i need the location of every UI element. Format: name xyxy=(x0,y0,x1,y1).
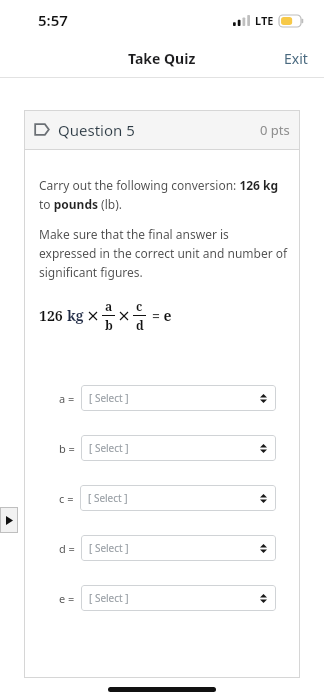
staticText: a = xyxy=(59,391,75,406)
staticText: 0 pts xyxy=(260,121,290,139)
staticText: b xyxy=(105,317,113,333)
staticText: Take Quiz xyxy=(128,49,196,68)
staticText: Question 5 xyxy=(58,120,135,140)
staticText: kg xyxy=(67,306,84,325)
staticText: 5:57 xyxy=(38,10,68,30)
button[interactable]: Select value for a xyxy=(81,385,276,411)
button[interactable]: Select value for b xyxy=(81,435,276,461)
staticText: d xyxy=(136,317,144,333)
button[interactable]: Exit xyxy=(268,43,324,74)
staticText: c = xyxy=(59,491,74,506)
staticText: [ Select ] xyxy=(88,491,128,505)
staticText: = e xyxy=(152,306,172,325)
button[interactable]: Select value for e xyxy=(81,585,276,611)
staticText: 126 xyxy=(39,306,67,325)
staticText: c xyxy=(136,298,143,314)
button[interactable]: Select value for d xyxy=(81,535,276,561)
staticText: Make sure that the final answer is expre… xyxy=(39,226,288,280)
staticText: [ Select ] xyxy=(89,391,129,405)
button[interactable]: Select value for c xyxy=(80,485,276,511)
staticText: Exit xyxy=(284,49,308,68)
staticText: b = xyxy=(59,441,75,456)
staticText: Carry out the following conversion: 126 … xyxy=(39,177,288,212)
staticText: e = xyxy=(59,591,75,606)
staticText: [ Select ] xyxy=(89,591,129,605)
staticText: [ Select ] xyxy=(89,541,129,555)
staticText: [ Select ] xyxy=(89,441,129,455)
staticText: a xyxy=(105,298,113,314)
staticText: d = xyxy=(59,541,75,556)
button[interactable]: Open navigation panel xyxy=(0,507,18,533)
staticText: LTE xyxy=(255,13,274,28)
